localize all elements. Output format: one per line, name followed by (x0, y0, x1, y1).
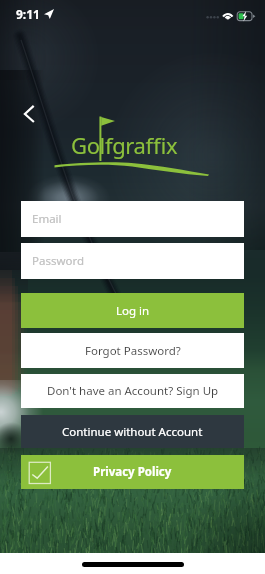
button[interactable]: Back (15, 98, 45, 128)
staticText: Log in (116, 303, 150, 319)
button[interactable]: Forgot Password? (21, 333, 244, 368)
staticText: Golfgraffix (71, 130, 178, 160)
button[interactable]: Email (21, 201, 244, 237)
button[interactable]: Continue without Account (21, 415, 244, 448)
staticText: Email (32, 211, 62, 227)
staticText: Continue without Account (62, 424, 203, 440)
button[interactable]: Password (21, 243, 244, 279)
staticText: Privacy Policy (93, 464, 172, 480)
staticText: Password (32, 253, 85, 269)
staticText: Don't have an Account? Sign Up (47, 383, 219, 399)
button[interactable]: Don't have an Account? Sign Up (21, 374, 244, 408)
staticText: Forgot Password? (85, 343, 181, 359)
button[interactable]: Privacy Policy (21, 455, 244, 489)
button[interactable]: Log in (21, 293, 244, 328)
staticText: 9:11 (16, 6, 40, 22)
